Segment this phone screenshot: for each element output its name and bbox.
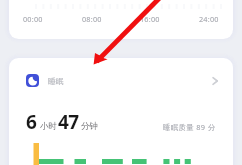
staticText: 16:00 bbox=[140, 14, 160, 24]
staticText: 小时 bbox=[40, 121, 57, 132]
staticText: 睡眠 bbox=[48, 76, 64, 86]
staticText: 6 bbox=[26, 109, 37, 135]
staticText: 47 bbox=[58, 109, 79, 135]
staticText: 分钟 bbox=[81, 121, 98, 132]
staticText: 24:00 bbox=[199, 14, 219, 24]
other: 查看睡眠详情 bbox=[211, 77, 219, 85]
staticText: 睡眠质量 89 分 bbox=[163, 122, 216, 132]
button[interactable]: 睡眠 bbox=[9, 58, 233, 102]
staticText: 08:00 bbox=[82, 14, 102, 24]
button[interactable]: 6 bbox=[9, 98, 233, 128]
staticText: 00:00 bbox=[23, 14, 43, 24]
